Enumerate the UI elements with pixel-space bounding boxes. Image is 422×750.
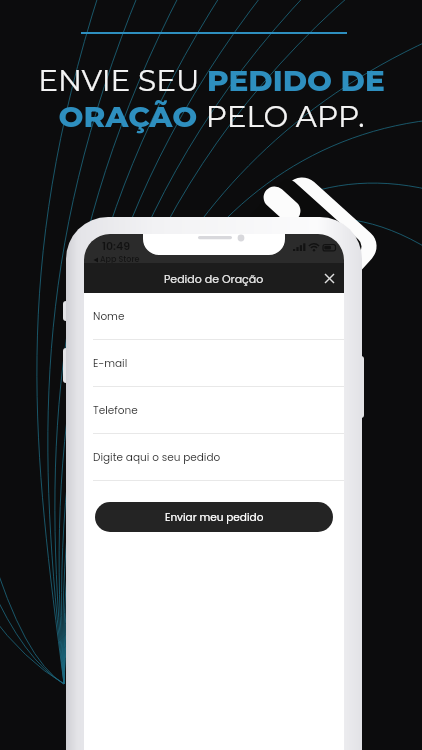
staticText: Telefone	[93, 403, 138, 418]
staticText: App Store	[100, 254, 140, 265]
staticText: Digite aqui o seu pedido	[93, 450, 221, 465]
staticText: Nome	[93, 309, 125, 324]
button[interactable]: E-mail	[84, 340, 344, 387]
staticText: E-mail	[93, 356, 128, 371]
button[interactable]: Nome	[84, 293, 344, 340]
button[interactable]: Digite aqui o seu pedido	[84, 434, 344, 481]
staticText: Pedido de Oração	[164, 271, 264, 286]
staticText: Enviar meu pedido	[165, 510, 264, 525]
staticText: ENVIE SEU PEDIDO DE ORAÇÃO PELO APP.	[38, 62, 385, 135]
button[interactable]: Enviar meu pedido	[95, 502, 333, 532]
staticText: 10:49	[102, 238, 131, 253]
button[interactable]: Fechar	[318, 267, 340, 289]
button[interactable]: Telefone	[84, 387, 344, 434]
